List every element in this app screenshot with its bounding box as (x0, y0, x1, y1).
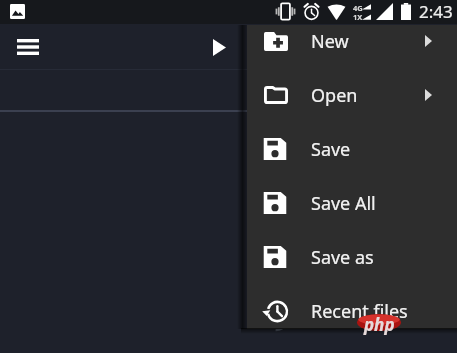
button[interactable]: Save All (247, 176, 457, 230)
staticText: Save All (311, 191, 376, 216)
button[interactable]: New (247, 25, 457, 68)
button[interactable]: Recent files (247, 284, 457, 329)
staticText: 2:43 (419, 0, 453, 23)
staticText: Recent files (311, 299, 408, 324)
button[interactable]: Run (203, 31, 235, 63)
staticText: 1X (353, 12, 363, 22)
button[interactable]: Save (247, 122, 457, 176)
staticText: php (364, 313, 395, 336)
button[interactable]: Menu (11, 30, 45, 64)
staticText: New (311, 29, 349, 54)
staticText: Save as (311, 245, 374, 270)
button[interactable]: Save as (247, 230, 457, 284)
button[interactable]: Open (247, 68, 457, 122)
staticText: Open (311, 83, 358, 108)
staticText: 4G (353, 3, 363, 13)
staticText: Save (311, 137, 351, 162)
